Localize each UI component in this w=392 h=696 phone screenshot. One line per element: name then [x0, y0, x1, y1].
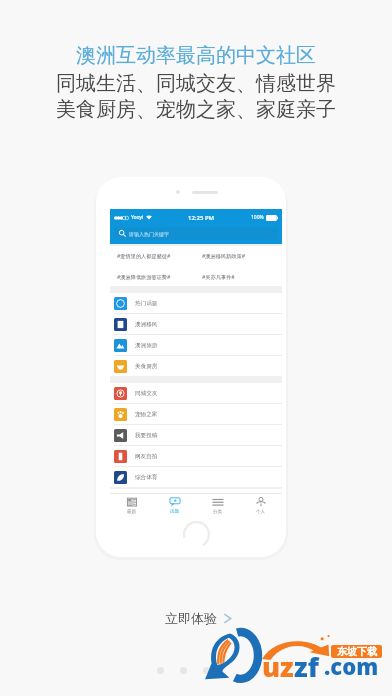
- staticText: 澳洲互动率最高的中文社区: [76, 43, 316, 68]
- staticText: 请输入热门关键字: [129, 231, 169, 237]
- button[interactable]: 美食厨房: [110, 356, 282, 376]
- staticText: 美食厨房: [135, 363, 158, 370]
- staticText: 话题: [170, 509, 179, 515]
- staticText: 澳洲移民: [135, 321, 158, 328]
- staticText: 热门话题: [135, 300, 158, 307]
- button[interactable]: 宠物之家: [110, 404, 282, 425]
- staticText: 100%: [251, 214, 264, 221]
- button[interactable]: #澳洲移民新政策#: [202, 252, 278, 259]
- button[interactable]: #澳洲降低旅游签证费#: [117, 273, 202, 280]
- button[interactable]: 我要投稿: [110, 425, 282, 446]
- button[interactable]: 最新: [110, 494, 153, 515]
- button[interactable]: #爱情里的人都是赌徒#: [117, 252, 202, 259]
- button[interactable]: 话题: [153, 494, 196, 515]
- staticText: 澳洲旅游: [135, 342, 158, 349]
- button[interactable]: #吴亦凡事件#: [202, 273, 278, 280]
- staticText: 12:25 PM: [188, 214, 215, 222]
- staticText: 综合体育: [135, 474, 158, 481]
- button[interactable]: 分类: [196, 494, 239, 515]
- staticText: 分类: [213, 509, 222, 515]
- button[interactable]: 同城交友: [110, 383, 282, 404]
- staticText: 同城生活、同城交友、情感世界: [56, 71, 336, 96]
- button[interactable]: 澳洲旅游: [110, 335, 282, 356]
- staticText: 同城交友: [135, 390, 158, 397]
- staticText: 立即体验: [165, 610, 217, 626]
- staticText: uz: [262, 648, 294, 685]
- staticText: 我要投稿: [135, 432, 158, 439]
- button[interactable]: Search: [114, 227, 278, 240]
- staticText: 网友自拍: [135, 453, 158, 460]
- button[interactable]: 个人: [239, 494, 282, 515]
- staticText: .com: [324, 651, 379, 681]
- staticText: zf: [294, 648, 319, 685]
- staticText: 东坡下载: [337, 645, 377, 658]
- staticText: Yooyi: [131, 214, 144, 221]
- button[interactable]: 立即体验: [165, 610, 232, 626]
- button[interactable]: 热门话题: [110, 293, 282, 314]
- button[interactable]: 澳洲移民: [110, 314, 282, 335]
- button[interactable]: 综合体育: [110, 467, 282, 487]
- staticText: 美食厨房、宠物之家、家庭亲子: [56, 97, 336, 122]
- button[interactable]: 网友自拍: [110, 446, 282, 467]
- staticText: 宠物之家: [135, 411, 158, 418]
- staticText: 最新: [127, 509, 136, 515]
- staticText: 个人: [256, 509, 265, 515]
